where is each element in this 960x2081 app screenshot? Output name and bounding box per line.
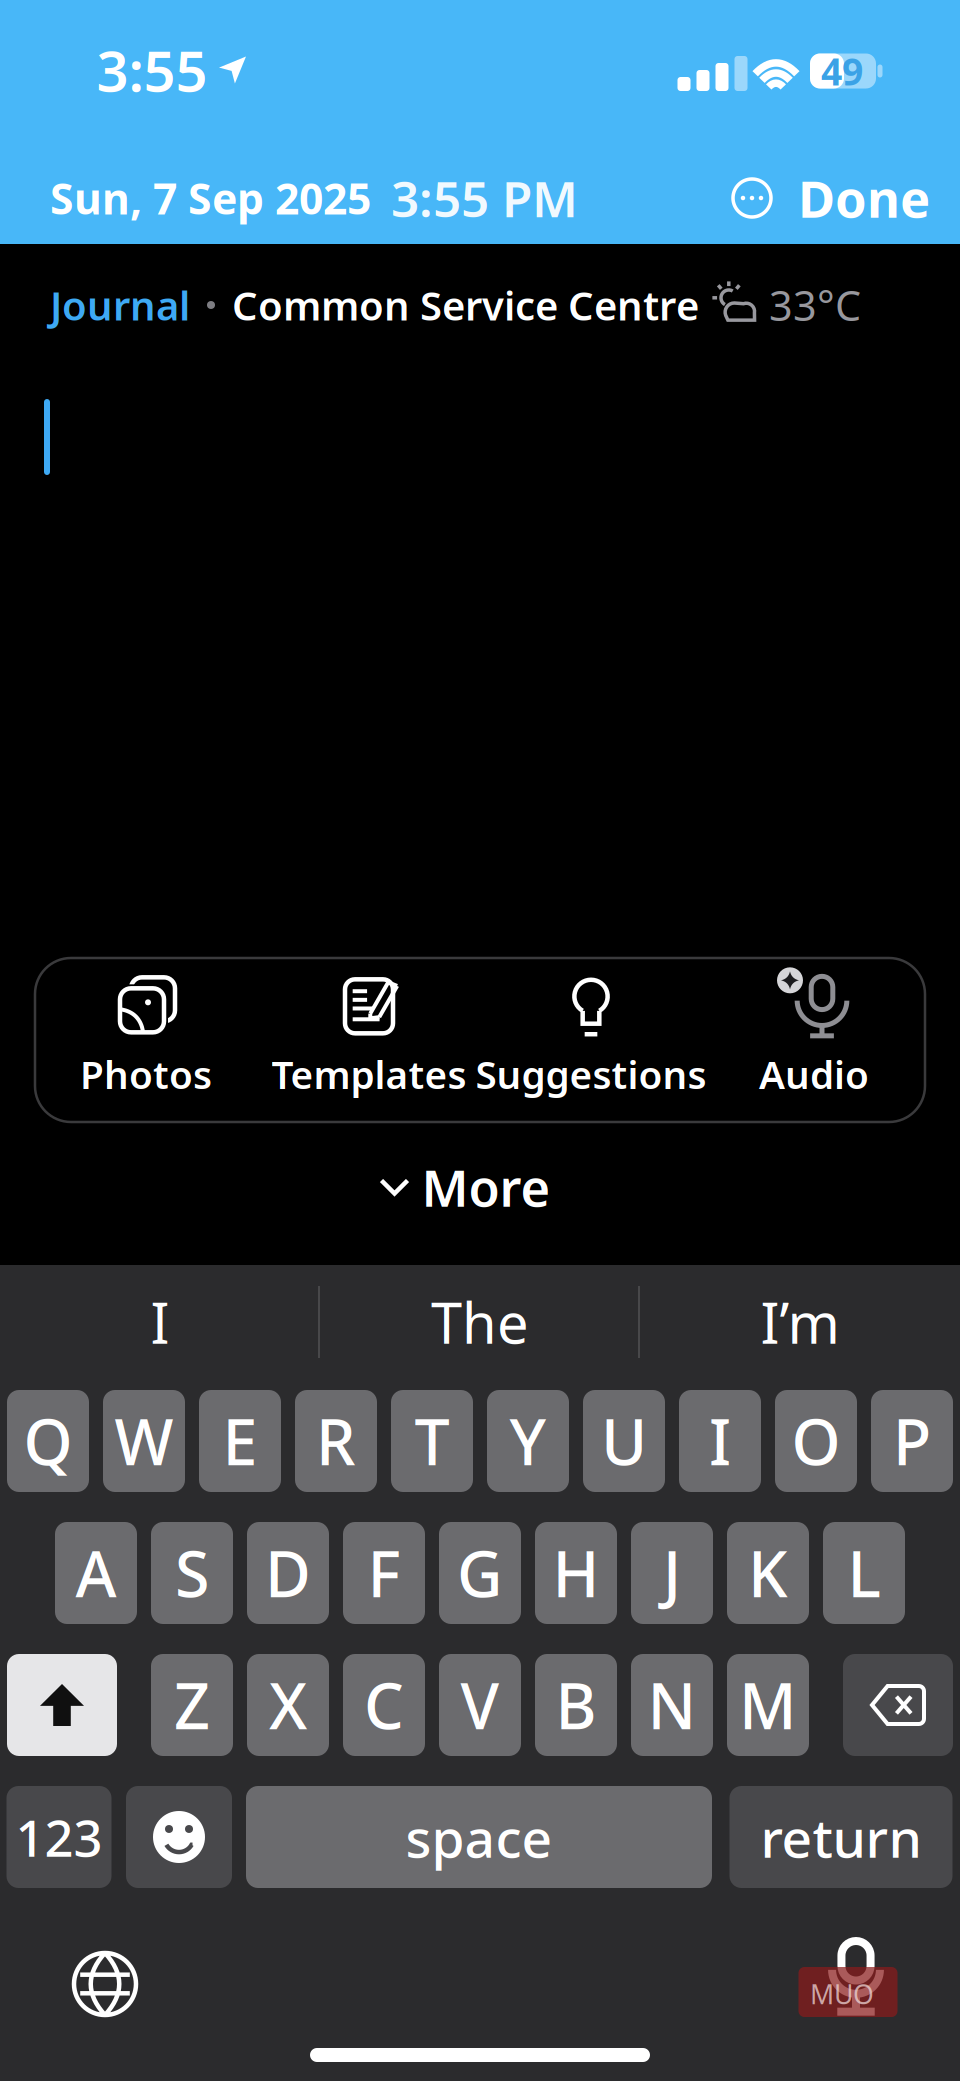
button[interactable]: M [727,1654,809,1756]
staticText: B [555,1663,596,1747]
staticText: Done [798,164,930,232]
staticText: L [847,1531,880,1615]
button[interactable]: space [246,1786,712,1888]
staticText: More [421,1153,550,1221]
button[interactable]: Suggestions [465,958,717,1118]
staticText: Photos [80,1048,212,1100]
staticText: Templates [271,1048,466,1100]
staticText: Audio [759,1048,869,1100]
button[interactable]: A [55,1522,137,1624]
staticText: Q [23,1399,72,1483]
button[interactable]: Shift [7,1654,117,1756]
staticText: Common Service Centre [232,278,699,331]
staticText: Z [174,1663,210,1747]
staticText: 3:55 PM [391,165,578,231]
button[interactable]: X [247,1654,329,1756]
staticText: G [457,1531,503,1615]
staticText: D [265,1531,311,1615]
button[interactable]: I [10,1267,310,1377]
button[interactable]: I [679,1390,761,1492]
button[interactable]: Next keyboard [74,1953,136,2015]
button[interactable]: return [729,1786,952,1888]
button[interactable]: More options [730,176,774,220]
button[interactable]: Emoji [126,1786,232,1888]
staticText: space [405,1802,552,1872]
button[interactable]: J [631,1522,713,1624]
button[interactable]: S [151,1522,233,1624]
button[interactable]: 123 [6,1786,111,1888]
button[interactable]: Dictation [795,1915,915,2035]
button[interactable]: The [330,1267,630,1377]
button[interactable]: U [583,1390,665,1492]
staticText: P [893,1399,931,1483]
button[interactable]: L [823,1522,905,1624]
button[interactable]: Done [774,164,930,232]
staticText: I’m [760,1285,839,1359]
button[interactable]: Z [151,1654,233,1756]
staticText: T [414,1399,449,1483]
staticText: F [367,1531,400,1615]
button[interactable]: Y [487,1390,569,1492]
staticText: E [222,1399,257,1483]
button[interactable]: Audio [688,958,940,1118]
button[interactable]: N [631,1654,713,1756]
staticText: V [460,1663,499,1747]
staticText: W [114,1399,173,1483]
staticText: N [647,1663,696,1747]
button[interactable]: V [439,1654,521,1756]
button[interactable]: R [295,1390,377,1492]
staticText: 49 [821,46,863,96]
staticText: Suggestions [475,1048,706,1100]
button[interactable]: Q [7,1390,89,1492]
button[interactable]: Journal [50,278,190,331]
button[interactable]: T [391,1390,473,1492]
staticText: C [364,1663,404,1747]
staticText: Sun, 7 Sep 2025 [50,170,371,226]
staticText: 3:55 [96,33,207,107]
staticText: return [760,1802,921,1872]
staticText: J [663,1531,681,1615]
button[interactable]: B [535,1654,617,1756]
staticText: S [175,1531,209,1615]
button[interactable]: Photos [20,958,272,1118]
button[interactable]: E [199,1390,281,1492]
staticText: I [709,1399,731,1483]
staticText: M [739,1663,797,1747]
button[interactable]: I’m [650,1267,950,1377]
staticText: A [75,1531,116,1615]
staticText: U [601,1399,647,1483]
button[interactable]: G [439,1522,521,1624]
button[interactable]: C [343,1654,425,1756]
button[interactable]: O [775,1390,857,1492]
staticText: I [150,1285,169,1359]
staticText: Journal [50,278,190,331]
staticText: O [791,1399,840,1483]
button[interactable]: More [381,1157,550,1217]
staticText: K [748,1531,788,1615]
button[interactable]: H [535,1522,617,1624]
button[interactable]: W [103,1390,185,1492]
button[interactable]: D [247,1522,329,1624]
button[interactable]: F [343,1522,425,1624]
staticText: The [431,1285,529,1359]
staticText: MUO [810,1976,874,2012]
button[interactable]: P [871,1390,953,1492]
staticText: H [552,1531,599,1615]
button[interactable]: Delete [843,1654,953,1756]
staticText: Y [509,1399,546,1483]
button[interactable]: K [727,1522,809,1624]
staticText: X [269,1663,307,1747]
staticText: 123 [15,1803,102,1871]
staticText: 33°C [769,278,861,332]
staticText: R [316,1399,356,1483]
button[interactable]: Templates [243,958,495,1118]
